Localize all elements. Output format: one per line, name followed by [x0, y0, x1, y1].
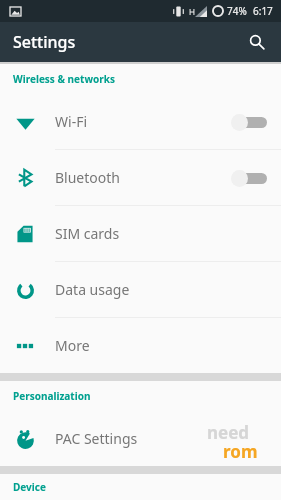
button[interactable]: Data usage — [0, 262, 281, 317]
staticText: need — [207, 421, 250, 444]
staticText: Personalization — [13, 389, 91, 403]
staticText: SIM cards — [55, 224, 267, 243]
staticText: Data usage — [55, 280, 267, 299]
staticText: 74% — [227, 4, 247, 18]
staticText: Bluetooth — [55, 168, 231, 187]
button[interactable]: SIM cards — [0, 206, 281, 261]
button[interactable]: PAC Settings — [0, 411, 281, 466]
staticText: 6:17 — [253, 4, 273, 18]
staticText: Device — [13, 480, 46, 494]
button[interactable]: Toggle — [231, 168, 267, 188]
button[interactable]: Toggle — [231, 112, 267, 132]
staticText: Wireless & networks — [13, 72, 115, 86]
staticText: Settings — [13, 31, 76, 53]
staticText: More — [55, 336, 267, 355]
button[interactable]: More — [0, 318, 281, 373]
button[interactable]: Search — [239, 24, 275, 60]
staticText: PAC Settings — [55, 429, 267, 448]
staticText: www.needrom.com — [196, 464, 261, 474]
button[interactable]: Bluetooth — [0, 150, 281, 205]
button[interactable]: Wi-Fi — [0, 94, 281, 149]
staticText: Wi-Fi — [55, 112, 231, 131]
staticText: rom — [223, 440, 258, 463]
